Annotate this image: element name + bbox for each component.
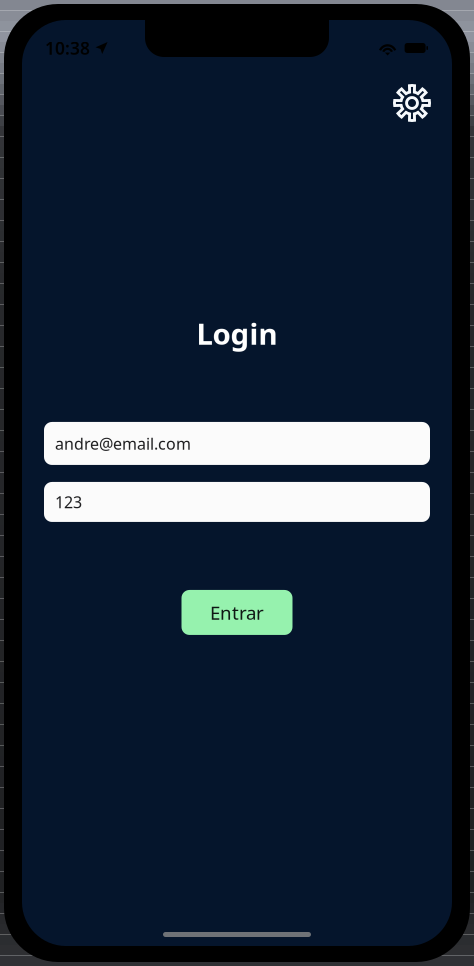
staticText: 123: [55, 491, 82, 512]
button[interactable]: Settings: [388, 79, 436, 127]
button[interactable]: Entrar: [181, 590, 292, 635]
staticText: Login: [196, 314, 277, 353]
staticText: andre@email.com: [55, 433, 191, 454]
staticText: Entrar: [210, 600, 264, 625]
staticText: 10:38: [45, 36, 90, 59]
